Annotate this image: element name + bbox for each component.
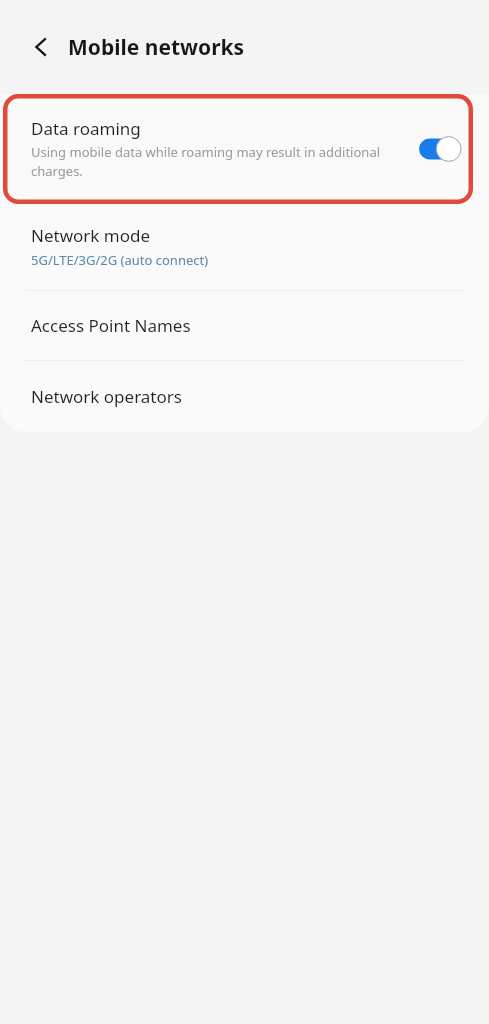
staticText: Data roaming bbox=[31, 117, 141, 140]
button[interactable]: Access Point Names bbox=[0, 291, 489, 360]
staticText: Access Point Names bbox=[31, 314, 191, 337]
button[interactable]: Back bbox=[21, 27, 61, 67]
staticText: Network mode bbox=[31, 224, 151, 247]
button[interactable]: Network mode bbox=[0, 203, 489, 290]
button[interactable]: Data roaming, on bbox=[416, 128, 468, 170]
staticText: Network operators bbox=[31, 385, 182, 408]
staticText: Using mobile data while roaming may resu… bbox=[31, 143, 406, 180]
staticText: 5G/LTE/3G/2G (auto connect) bbox=[31, 251, 209, 269]
button[interactable]: Data roaming bbox=[0, 94, 489, 203]
staticText: Mobile networks bbox=[68, 33, 245, 62]
button[interactable]: Network operators bbox=[0, 361, 489, 432]
